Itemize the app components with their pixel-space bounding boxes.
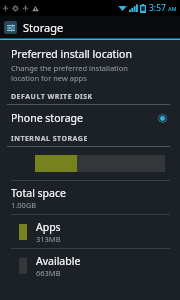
staticText: INTERNAL STORAGE [11, 134, 88, 144]
staticText: Apps [36, 220, 61, 234]
staticText: 313MB [36, 234, 61, 244]
staticText: Total space [11, 186, 66, 200]
button[interactable]: Total space [0, 181, 180, 214]
staticText: Phone storage [11, 111, 158, 125]
button[interactable]: Apps [0, 215, 180, 248]
staticText: location for new apps [11, 73, 87, 83]
staticText: 3:57 [149, 2, 166, 14]
staticText: AM [168, 5, 177, 12]
button[interactable]: Phone storage [0, 105, 180, 131]
staticText: Available [36, 254, 81, 268]
button[interactable]: Available [0, 249, 180, 282]
button[interactable]: Preferred install location [0, 40, 180, 89]
staticText: DEFAULT WRITE DISK [11, 92, 93, 102]
staticText: 663MB [36, 268, 61, 278]
staticText: Preferred install location [11, 47, 132, 61]
button[interactable]: Storage settings [0, 16, 180, 38]
staticText: 1.00GB [11, 200, 37, 210]
staticText: Change the preferred installation [11, 63, 128, 73]
staticText: Storage [23, 20, 64, 35]
